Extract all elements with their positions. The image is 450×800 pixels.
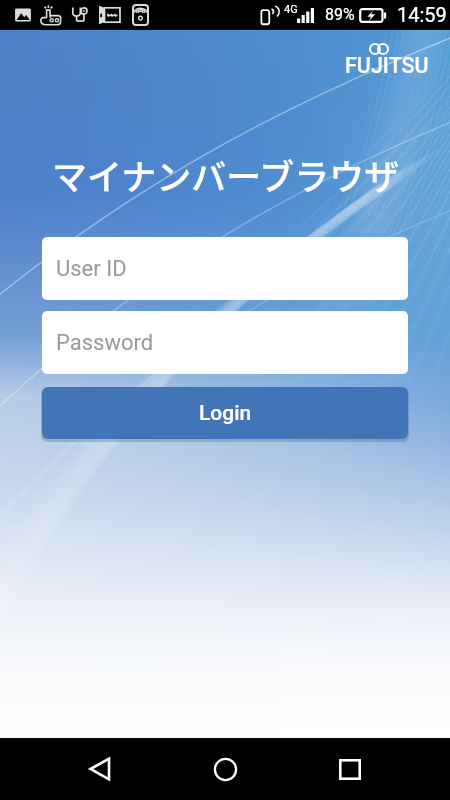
button[interactable]: Recent apps <box>320 738 380 800</box>
staticText: 14:59 <box>397 3 447 26</box>
staticText: Login <box>199 401 252 426</box>
button[interactable]: Password <box>42 311 408 374</box>
staticText: FUJITSU <box>345 53 429 78</box>
staticText: マイナンバーブラウザ <box>52 149 400 200</box>
button[interactable]: Back <box>70 738 130 800</box>
staticText: 89% <box>325 5 355 24</box>
button[interactable]: User ID <box>42 237 408 300</box>
button[interactable]: Home <box>195 738 255 800</box>
staticText: User ID <box>56 256 127 282</box>
staticText: Password <box>56 330 154 356</box>
button[interactable]: Login <box>42 387 408 439</box>
staticText: 4G <box>284 3 298 16</box>
